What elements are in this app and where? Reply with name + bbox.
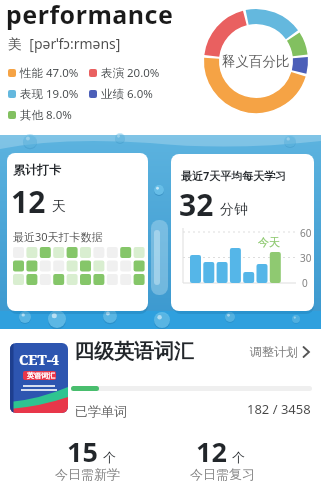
staticText: 个 bbox=[103, 449, 116, 465]
button[interactable]: 调整计划 bbox=[250, 344, 311, 359]
staticText: 15 bbox=[67, 433, 98, 470]
button[interactable]: 表现 19.0% bbox=[8, 86, 79, 102]
button[interactable]: 累计打卡 bbox=[7, 153, 148, 311]
staticText: 今日需复习 bbox=[190, 466, 255, 482]
button[interactable]: 业绩 6.0% bbox=[89, 86, 153, 102]
staticText: 调整计划 bbox=[250, 344, 298, 359]
button[interactable]: 15 bbox=[67, 433, 116, 470]
staticText: 32 bbox=[179, 184, 214, 225]
staticText: CET-4 bbox=[19, 350, 59, 369]
button[interactable]: CET-4 bbox=[10, 343, 68, 413]
staticText: performance bbox=[6, 0, 174, 31]
staticText: 分钟 bbox=[220, 201, 248, 219]
staticText: 英语词汇 bbox=[27, 371, 55, 380]
staticText: 性能 47.0% bbox=[20, 65, 79, 81]
button[interactable]: 性能 47.0% bbox=[8, 65, 79, 81]
staticText: 182 / 3458 bbox=[247, 400, 311, 418]
staticText: 其他 8.0% bbox=[20, 107, 72, 123]
staticText: 0 bbox=[302, 276, 308, 290]
staticText: 业绩 6.0% bbox=[101, 86, 153, 102]
staticText: 60 bbox=[300, 226, 312, 240]
staticText: 释义百分比 bbox=[222, 53, 290, 70]
staticText: 最近30天打卡数据 bbox=[13, 229, 103, 244]
staticText: 累计打卡 bbox=[13, 162, 61, 177]
staticText: 天 bbox=[52, 198, 66, 216]
staticText: 12 bbox=[11, 181, 46, 222]
button[interactable]: 其他 8.0% bbox=[8, 107, 72, 123]
staticText: 表现 19.0% bbox=[20, 86, 79, 102]
staticText: 今天 bbox=[258, 235, 280, 249]
staticText: 个 bbox=[232, 449, 245, 465]
staticText: 12 bbox=[196, 433, 227, 470]
staticText: 30 bbox=[300, 251, 312, 265]
button[interactable]: 12 bbox=[196, 433, 245, 470]
button[interactable]: 最近7天平均每天学习 bbox=[171, 154, 314, 311]
staticText: 美 [pərˈfɔ:rməns] bbox=[8, 34, 121, 53]
staticText: 今日需新学 bbox=[55, 466, 120, 482]
staticText: 表演 20.0% bbox=[101, 65, 160, 81]
staticText: 四级英语词汇 bbox=[74, 339, 194, 364]
button[interactable]: 表演 20.0% bbox=[89, 65, 160, 81]
staticText: 已学单词 bbox=[75, 403, 127, 419]
staticText: 最近7天平均每天学习 bbox=[181, 168, 287, 183]
